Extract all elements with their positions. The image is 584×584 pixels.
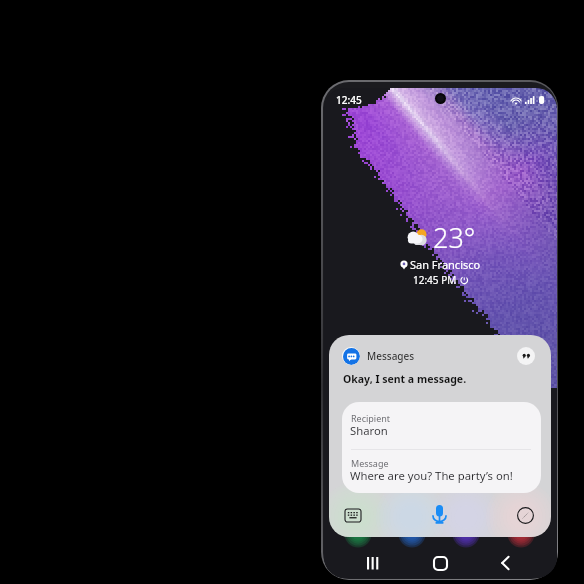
button[interactable]: Back [491, 549, 519, 577]
staticText: Okay, I sent a message. [343, 372, 467, 386]
staticText: 12:45 PM [413, 273, 457, 287]
button[interactable]: Keyboard [341, 503, 365, 527]
staticText: Recipient [351, 412, 391, 424]
button[interactable]: Recents [359, 549, 387, 577]
staticText: Message [351, 457, 389, 469]
button[interactable]: Quote [517, 347, 535, 365]
button[interactable]: Explore [513, 503, 537, 527]
button[interactable]: Microphone [426, 501, 452, 527]
staticText: 12:45 [336, 93, 362, 107]
staticText: Sharon [350, 423, 388, 438]
staticText: San Francisco [410, 257, 481, 272]
staticText: Where are you? The party’s on! [350, 468, 513, 483]
staticText: Messages [367, 349, 415, 363]
button[interactable]: Home [426, 549, 454, 577]
staticText: 23° [433, 219, 476, 256]
